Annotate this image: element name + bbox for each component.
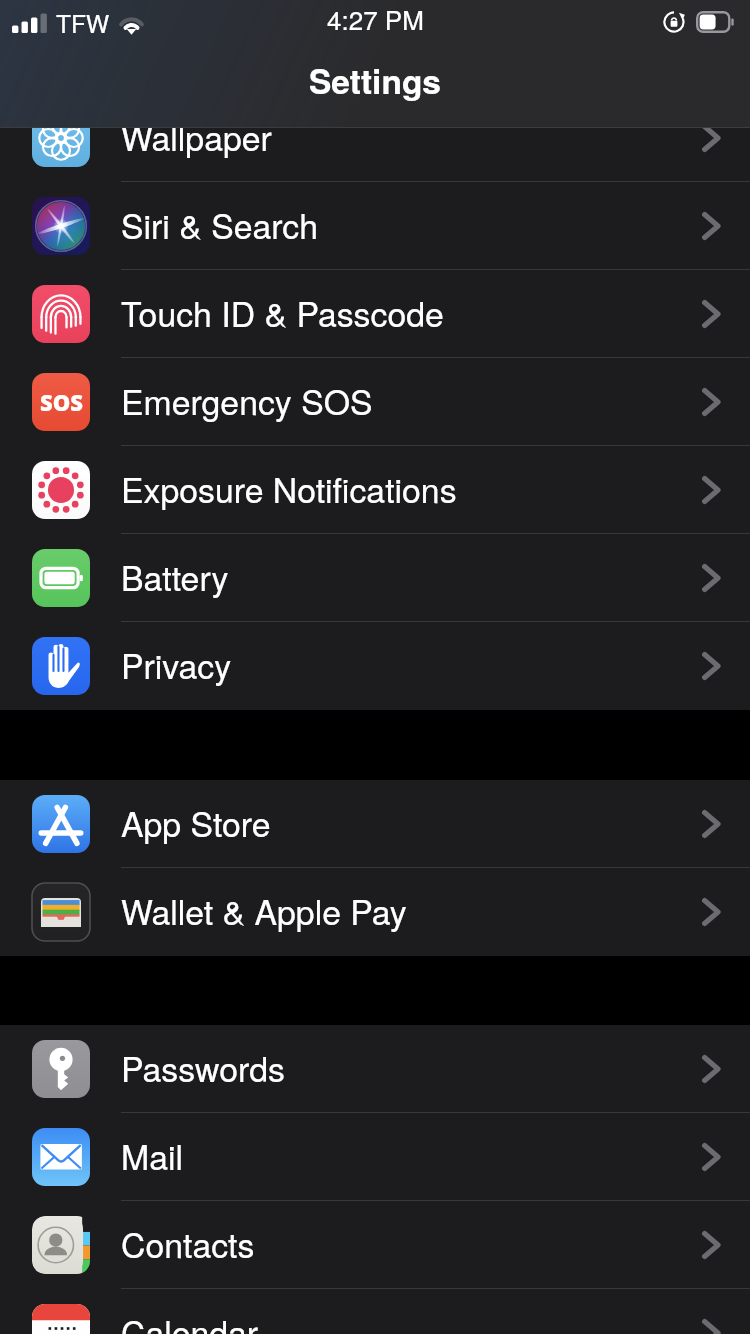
staticText: Mail <box>121 1131 183 1179</box>
staticText: Wallet & Apple Pay <box>121 886 407 934</box>
staticText: Siri & Search <box>121 200 319 248</box>
button[interactable]: Passwords <box>0 1025 750 1113</box>
button[interactable]: App Store <box>0 780 750 868</box>
button[interactable]: Wallpaper <box>0 94 750 182</box>
button[interactable]: Mail <box>0 1113 750 1201</box>
button[interactable]: Exposure Notifications <box>0 446 750 534</box>
button[interactable]: Wallet & Apple Pay <box>0 868 750 956</box>
staticText: Battery <box>121 552 229 600</box>
staticText: Contacts <box>121 1219 255 1267</box>
staticText: Calendar <box>121 1307 259 1334</box>
staticText: Exposure Notifications <box>121 464 457 512</box>
button[interactable]: Calendar <box>0 1289 750 1334</box>
staticText: SOS <box>40 387 83 417</box>
staticText: Touch ID & Passcode <box>121 288 444 336</box>
button[interactable]: Touch ID & Passcode <box>0 270 750 358</box>
staticText: 4:27 PM <box>327 0 424 37</box>
staticText: Privacy <box>121 640 232 688</box>
staticText: Emergency SOS <box>121 376 373 424</box>
button[interactable]: Siri & Search <box>0 182 750 270</box>
button[interactable]: SOS <box>0 358 750 446</box>
staticText: TFW <box>56 5 110 40</box>
staticText: Passwords <box>121 1043 285 1091</box>
button[interactable]: Contacts <box>0 1201 750 1289</box>
staticText: Settings <box>309 56 441 104</box>
staticText: App Store <box>121 798 271 846</box>
other: Rotation Lock <box>663 11 685 33</box>
staticText: Wallpaper <box>121 112 272 160</box>
button[interactable]: Privacy <box>0 622 750 710</box>
button[interactable]: Battery <box>0 534 750 622</box>
